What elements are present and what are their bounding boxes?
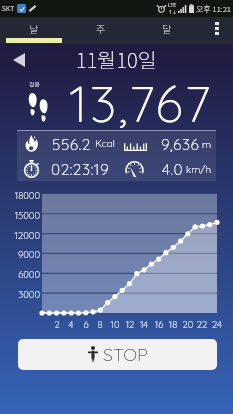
staticText: 6: [78, 318, 94, 330]
button[interactable]: STOP: [18, 339, 217, 370]
staticText: 달: [162, 21, 172, 35]
staticText: Kcal: [95, 137, 115, 150]
button[interactable]: Previous day: [8, 49, 30, 71]
staticText: 02:23:19: [51, 159, 110, 178]
staticText: 걸음: [29, 80, 41, 89]
staticText: 3000: [0, 288, 40, 300]
staticText: 556.2: [52, 134, 91, 153]
staticText: 12: [122, 318, 138, 330]
staticText: 6000: [0, 268, 40, 280]
staticText: SKT: [2, 4, 15, 14]
button[interactable]: 달: [134, 17, 200, 44]
staticText: 22: [194, 318, 210, 330]
staticText: 11월10일: [76, 44, 157, 74]
button[interactable]: 주: [68, 17, 134, 44]
staticText: 12000: [0, 229, 40, 241]
staticText: LTE: [168, 2, 177, 9]
staticText: 9000: [0, 248, 40, 260]
staticText: 24: [209, 318, 225, 330]
staticText: 14: [136, 318, 152, 330]
staticText: 주: [96, 21, 106, 35]
staticText: 18000: [0, 189, 40, 201]
staticText: 16: [151, 318, 167, 330]
staticText: 4: [63, 318, 79, 330]
staticText: 4.0: [162, 159, 184, 178]
staticText: STOP: [103, 343, 148, 366]
staticText: 오후 11:21: [196, 3, 231, 15]
staticText: 2: [49, 318, 65, 330]
staticText: 날: [29, 21, 39, 35]
staticText: 20: [180, 318, 196, 330]
staticText: 13,767: [69, 71, 213, 129]
button[interactable]: 날: [0, 17, 68, 44]
staticText: 10: [107, 318, 123, 330]
button[interactable]: More options: [200, 17, 233, 44]
staticText: 8: [92, 318, 108, 330]
staticText: 15000: [0, 209, 40, 221]
staticText: km/h: [186, 163, 212, 176]
staticText: 18: [165, 318, 181, 330]
staticText: 9,636: [161, 134, 200, 153]
staticText: ↑↓: [168, 9, 177, 15]
staticText: m: [202, 138, 212, 151]
